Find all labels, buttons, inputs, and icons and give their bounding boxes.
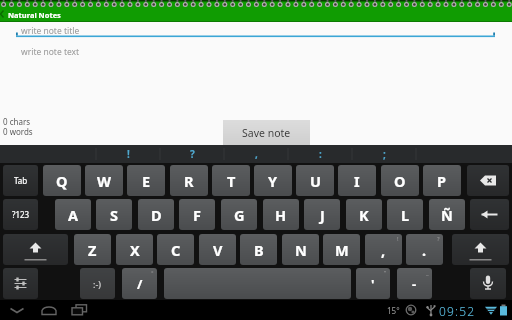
button[interactable]: O — [381, 165, 419, 196]
staticText: V — [213, 240, 223, 260]
button[interactable]: S — [96, 199, 132, 230]
staticText: , — [255, 147, 258, 161]
staticText: - — [412, 275, 417, 293]
staticText: Tab — [14, 175, 28, 186]
staticText: / — [137, 275, 143, 293]
button[interactable]: C — [157, 234, 194, 265]
staticText: write note text — [21, 46, 80, 58]
button[interactable]: I — [338, 165, 376, 196]
button[interactable] — [4, 300, 30, 320]
button[interactable]: X — [116, 234, 153, 265]
staticText: P — [437, 171, 447, 191]
staticText: Y — [268, 171, 278, 191]
staticText: ! — [127, 147, 130, 161]
staticText: _ — [426, 269, 429, 277]
staticText: C — [171, 240, 181, 260]
button[interactable]: ! — [96, 145, 160, 163]
staticText: H — [275, 205, 287, 225]
button[interactable]: , — [365, 234, 402, 265]
staticText: E — [142, 171, 151, 191]
staticText: J — [320, 205, 325, 225]
staticText: ! — [397, 235, 399, 243]
staticText: U — [310, 171, 321, 191]
button[interactable]: E — [127, 165, 165, 196]
button[interactable]: Q — [43, 165, 81, 196]
staticText: ; — [383, 147, 386, 161]
staticText: 09:52 — [439, 303, 476, 319]
button[interactable]: J — [304, 199, 340, 230]
staticText: , — [381, 240, 386, 260]
staticText: D — [151, 205, 162, 225]
button[interactable]: : — [288, 145, 352, 163]
staticText: W — [97, 171, 112, 191]
staticText: 0 words — [3, 126, 33, 137]
button[interactable]: ? — [160, 145, 224, 163]
button[interactable]: / — [122, 268, 157, 299]
staticText: N — [295, 240, 307, 260]
staticText: . — [422, 240, 427, 260]
button[interactable]: K — [346, 199, 382, 230]
button[interactable]: M — [323, 234, 360, 265]
button[interactable]: A — [55, 199, 91, 230]
button[interactable]: :-) — [80, 268, 115, 299]
button[interactable]: Save note — [223, 120, 310, 145]
button[interactable]: - — [397, 268, 432, 299]
staticText: Q — [56, 171, 68, 191]
staticText: ? — [190, 147, 195, 161]
button[interactable]: T — [212, 165, 250, 196]
staticText: Ñ — [441, 205, 453, 225]
button[interactable] — [467, 165, 509, 196]
button[interactable]: V — [199, 234, 236, 265]
button[interactable]: Ñ — [429, 199, 465, 230]
button[interactable] — [470, 268, 506, 299]
button[interactable]: Y — [254, 165, 292, 196]
button[interactable]: L — [387, 199, 423, 230]
button[interactable]: F — [179, 199, 215, 230]
button[interactable]: Z — [74, 234, 111, 265]
button[interactable] — [66, 300, 92, 320]
staticText: T — [227, 171, 236, 191]
staticText: Natural Notes — [8, 10, 61, 20]
button[interactable] — [3, 268, 38, 299]
button[interactable]: B — [240, 234, 277, 265]
button[interactable]: ; — [352, 145, 416, 163]
button[interactable]: ' — [356, 268, 390, 299]
staticText: Save note — [242, 126, 291, 140]
button[interactable]: P — [423, 165, 461, 196]
button[interactable]: , — [224, 145, 288, 163]
button[interactable] — [470, 199, 509, 230]
staticText: ' — [371, 275, 375, 293]
staticText: ° — [151, 269, 154, 277]
staticText: F — [193, 205, 201, 225]
staticText: S — [110, 205, 118, 225]
button[interactable] — [164, 268, 351, 299]
button[interactable]: ?123 — [3, 199, 38, 230]
staticText: O — [394, 171, 406, 191]
staticText: M — [335, 240, 349, 260]
button[interactable] — [3, 234, 68, 265]
button[interactable]: . — [406, 234, 443, 265]
staticText: ?123 — [12, 209, 30, 220]
staticText: 15° — [387, 305, 400, 316]
staticText: Z — [88, 240, 97, 260]
staticText: B — [254, 240, 264, 260]
button[interactable]: H — [263, 199, 299, 230]
button[interactable]: write note text — [16, 44, 495, 58]
staticText: ? — [437, 235, 440, 243]
staticText: 0 chars — [3, 116, 31, 127]
staticText: : — [319, 147, 322, 161]
button[interactable]: write note title — [16, 23, 495, 37]
button[interactable] — [452, 234, 509, 265]
staticText: write note title — [21, 25, 80, 37]
staticText: A — [68, 205, 79, 225]
button[interactable]: W — [85, 165, 123, 196]
staticText: K — [359, 205, 369, 225]
button[interactable]: R — [170, 165, 208, 196]
button[interactable]: U — [296, 165, 334, 196]
button[interactable] — [36, 300, 62, 320]
button[interactable]: N — [282, 234, 319, 265]
staticText: X — [130, 240, 140, 260]
button[interactable]: G — [221, 199, 257, 230]
button[interactable]: Tab — [3, 165, 38, 196]
button[interactable]: D — [138, 199, 174, 230]
